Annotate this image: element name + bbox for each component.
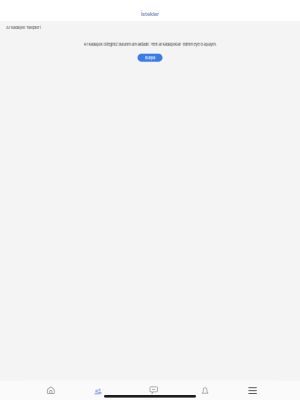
button[interactable]: Notifications — [176, 380, 227, 394]
button[interactable]: Messages — [126, 380, 176, 394]
button[interactable]: Home — [24, 380, 75, 394]
staticText: İstekler — [141, 11, 159, 17]
button[interactable]: Friends — [75, 380, 126, 394]
staticText: Arkadaşlık isteğiniz bulunmamaktadır. Ye… — [83, 42, 216, 47]
button[interactable]: Başla — [137, 54, 162, 62]
staticText: Başla — [145, 55, 155, 60]
staticText: Arkadaşlık Talepleri — [6, 25, 41, 30]
button[interactable]: Menu — [227, 380, 278, 394]
